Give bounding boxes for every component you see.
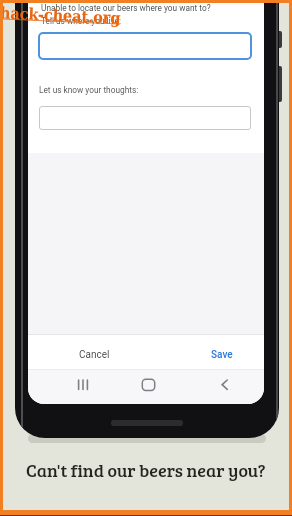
button[interactable]: Save <box>192 343 252 367</box>
staticText: hack-cheat.org <box>0 3 121 28</box>
button[interactable]: Cancel <box>63 343 125 367</box>
button[interactable] <box>73 375 93 395</box>
staticText: Cancel <box>79 349 110 361</box>
button[interactable] <box>38 32 252 60</box>
staticText: Can't find our beers near you? <box>26 458 266 482</box>
button[interactable] <box>138 375 159 395</box>
staticText: Unable to locate our beers where you wan… <box>41 3 211 13</box>
button[interactable] <box>214 375 235 395</box>
staticText: Save <box>211 349 233 361</box>
staticText: Let us know your thoughts: <box>39 85 139 95</box>
button[interactable] <box>39 106 251 130</box>
staticText: Tell us where you live: <box>41 16 121 26</box>
